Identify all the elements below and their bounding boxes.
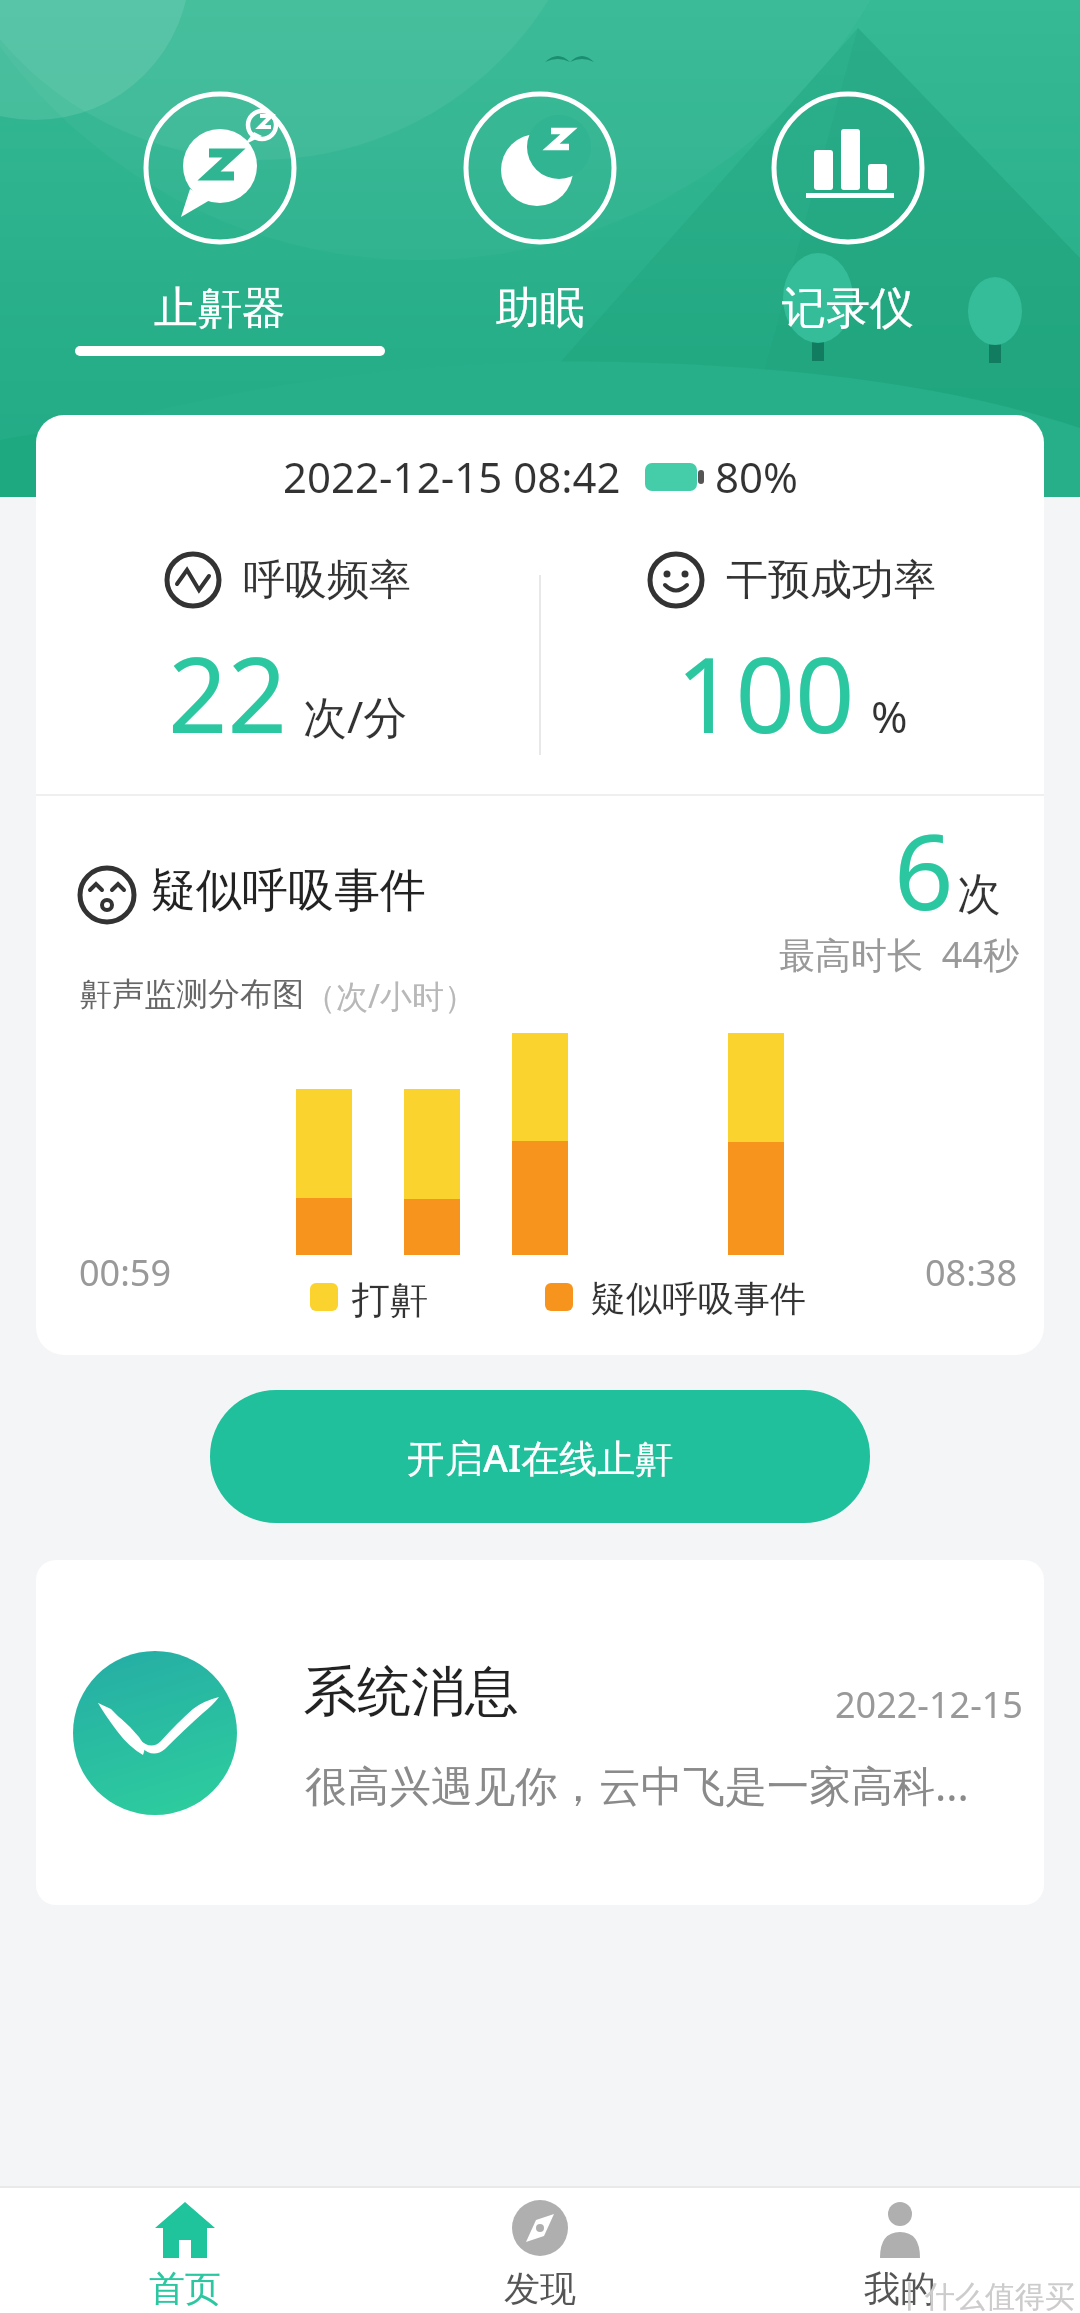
- staticText: 疑似呼吸事件: [150, 862, 426, 920]
- staticText: 干预成功率: [726, 554, 936, 607]
- staticText: 很高兴遇见你，云中飞是一家高科...: [305, 1756, 969, 1813]
- button[interactable]: 止鼾器: [70, 85, 370, 336]
- staticText: 100: [676, 622, 855, 762]
- staticText: 止鼾器: [154, 281, 286, 336]
- staticText: 6: [894, 799, 954, 941]
- staticText: 最高时长 44秒: [779, 930, 1019, 979]
- staticText: 系统消息: [303, 1658, 519, 1726]
- staticText: 鼾声监测分布图: [80, 974, 304, 1014]
- button[interactable]: 记录仪: [698, 85, 998, 336]
- staticText: 首页: [149, 2266, 221, 2311]
- staticText: 呼吸频率: [243, 554, 411, 607]
- staticText: %: [871, 686, 908, 746]
- staticText: （次/小时）: [304, 974, 476, 1018]
- button[interactable]: 助眠: [390, 85, 690, 336]
- button[interactable]: [36, 1560, 1044, 1905]
- staticText: 08:38: [925, 1248, 1018, 1297]
- staticText: 我的: [864, 2266, 936, 2311]
- button[interactable]: 发现: [392, 2196, 688, 2311]
- button[interactable]: 开启AI在线止鼾: [210, 1390, 870, 1523]
- staticText: 80%: [715, 448, 798, 505]
- staticText: 2022-12-15 08:42: [283, 448, 621, 505]
- staticText: 发现: [504, 2266, 576, 2311]
- button[interactable]: 我的: [752, 2196, 1048, 2311]
- staticText: 00:59: [79, 1248, 172, 1297]
- staticText: 2022-12-15: [835, 1680, 1023, 1729]
- staticText: 次/分: [303, 686, 408, 746]
- staticText: 助眠: [496, 281, 584, 336]
- staticText: 丨什么值得买: [895, 2278, 1075, 2313]
- button[interactable]: 首页: [37, 2196, 333, 2311]
- staticText: 记录仪: [782, 281, 914, 336]
- staticText: 打鼾: [352, 1276, 428, 1324]
- staticText: 次: [957, 867, 1001, 922]
- staticText: 疑似呼吸事件: [590, 1276, 806, 1321]
- staticText: 22: [168, 622, 287, 762]
- staticText: 开启AI在线止鼾: [407, 1431, 674, 1483]
